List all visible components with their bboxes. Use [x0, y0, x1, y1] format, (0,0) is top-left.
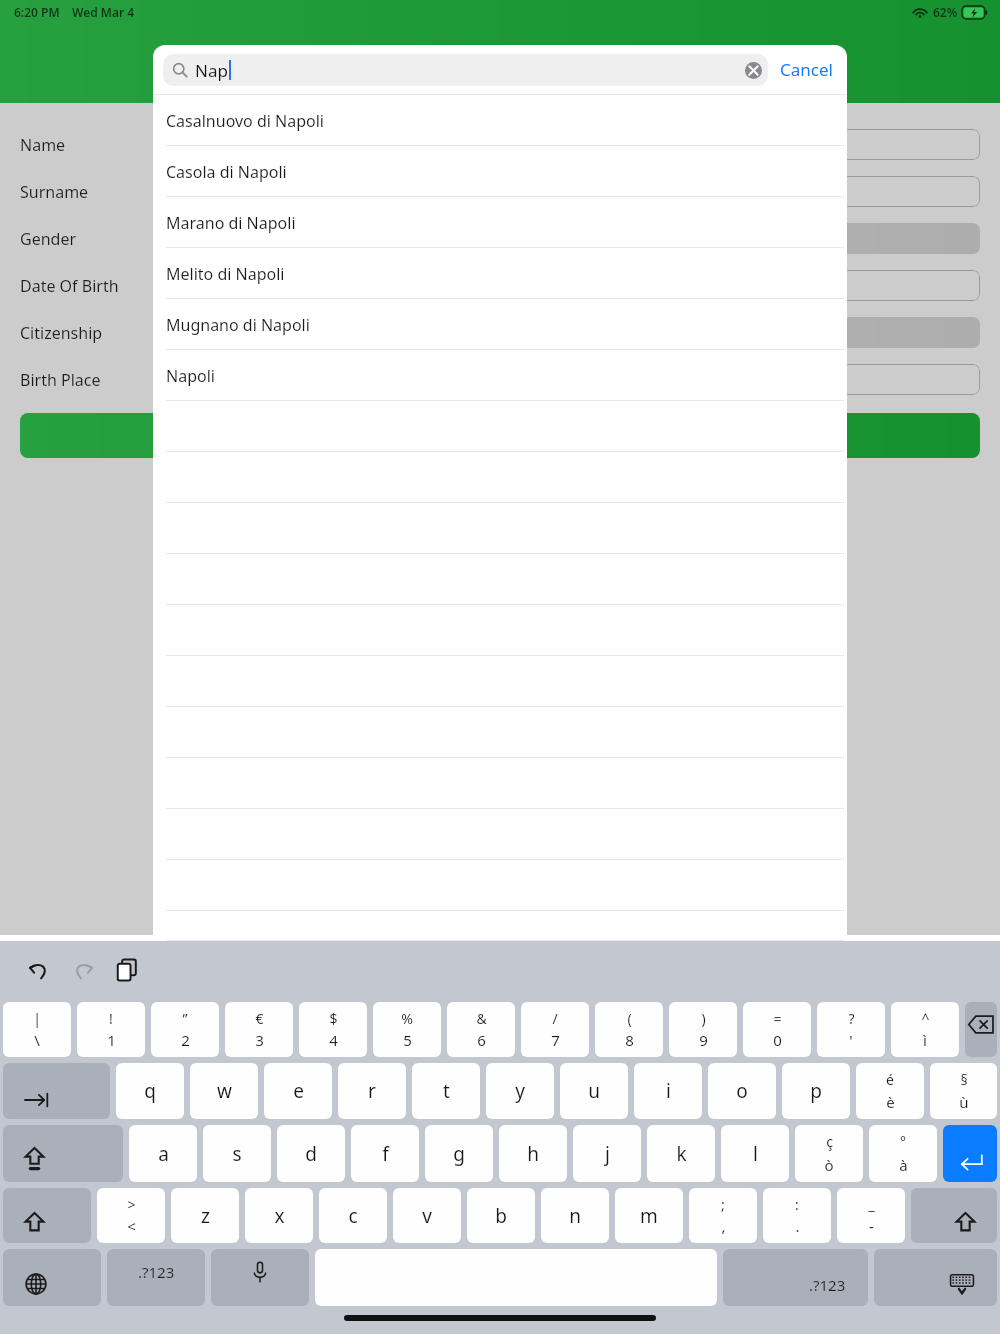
- button[interactable]: [20, 413, 980, 458]
- staticText: j: [605, 1141, 610, 1167]
- button[interactable]: c: [319, 1188, 387, 1243]
- button[interactable]: o: [708, 1063, 776, 1119]
- staticText: 3: [255, 1030, 264, 1050]
- button[interactable]: f: [351, 1125, 419, 1182]
- button[interactable]: ^: [891, 1002, 959, 1057]
- staticText: .: [795, 1216, 800, 1236]
- button[interactable]: (: [595, 1002, 663, 1057]
- button[interactable]: n: [541, 1188, 609, 1243]
- button[interactable]: p: [782, 1063, 850, 1119]
- button[interactable]: Dictation: [211, 1249, 309, 1306]
- button[interactable]: Tab: [3, 1063, 110, 1119]
- button[interactable]: ROSSI: [154, 176, 980, 207]
- staticText: b: [495, 1203, 507, 1229]
- button[interactable]: q: [116, 1063, 184, 1119]
- button[interactable]: Shift: [911, 1188, 997, 1243]
- button[interactable]: §: [930, 1063, 997, 1119]
- staticText: !: [109, 1009, 113, 1028]
- button[interactable]: Hide keyboard: [874, 1249, 997, 1306]
- button[interactable]: Caps lock: [3, 1125, 123, 1182]
- button[interactable]: ?: [817, 1002, 885, 1057]
- button[interactable]: d: [277, 1125, 345, 1182]
- staticText: 8: [625, 1030, 634, 1050]
- button[interactable]: x: [245, 1188, 313, 1243]
- staticText: °: [900, 1132, 906, 1151]
- button[interactable]: g: [425, 1125, 493, 1182]
- button[interactable]: %: [373, 1002, 441, 1057]
- button[interactable]: j: [573, 1125, 641, 1182]
- button[interactable]: e: [264, 1063, 332, 1119]
- button[interactable]: Return: [943, 1125, 997, 1182]
- button[interactable]: !: [77, 1002, 145, 1057]
- button[interactable]: Cancel: [778, 52, 835, 87]
- button[interactable]: Numbers and symbols: [107, 1249, 205, 1306]
- button[interactable]: ;: [689, 1188, 757, 1243]
- button[interactable]: S: [154, 270, 980, 301]
- button[interactable]: Redo: [66, 953, 100, 987]
- button[interactable]: =: [743, 1002, 811, 1057]
- button[interactable]: é: [856, 1063, 924, 1119]
- staticText: e: [293, 1078, 304, 1104]
- button[interactable]: PAOLO: [154, 129, 980, 160]
- button[interactable]: Marano di Napoli: [153, 197, 847, 248]
- staticText: Name: [20, 134, 66, 156]
- button[interactable]: r: [338, 1063, 406, 1119]
- button[interactable]: y: [486, 1063, 554, 1119]
- button[interactable]: w: [190, 1063, 258, 1119]
- staticText: Marano di Napoli: [166, 212, 296, 234]
- button[interactable]: a: [129, 1125, 197, 1182]
- button[interactable]: k: [647, 1125, 715, 1182]
- staticText: m: [640, 1203, 658, 1229]
- staticText: é: [886, 1070, 894, 1089]
- button[interactable]: |: [3, 1002, 71, 1057]
- button[interactable]: Nap: [163, 54, 768, 86]
- button[interactable]: &: [447, 1002, 515, 1057]
- button[interactable]: u: [560, 1063, 628, 1119]
- button[interactable]: >: [97, 1188, 165, 1243]
- staticText: à: [899, 1155, 908, 1175]
- button[interactable]: Backspace: [965, 1002, 997, 1057]
- staticText: Wed Mar 4: [72, 4, 135, 20]
- button[interactable]: t: [412, 1063, 480, 1119]
- button[interactable]: Napoli: [153, 350, 847, 401]
- button[interactable]: ): [669, 1002, 737, 1057]
- button[interactable]: Melito di Napoli: [153, 248, 847, 299]
- button[interactable]: Clear text: [745, 62, 762, 79]
- button[interactable]: h: [499, 1125, 567, 1182]
- button[interactable]: Paste: [110, 953, 144, 987]
- button[interactable]: _: [837, 1188, 905, 1243]
- staticText: 1: [107, 1030, 116, 1050]
- button[interactable]: /: [521, 1002, 589, 1057]
- button[interactable]: €: [225, 1002, 293, 1057]
- button[interactable]: i: [634, 1063, 702, 1119]
- staticText: Napoli: [166, 365, 215, 387]
- staticText: ROSSI: [163, 183, 200, 201]
- button[interactable]: Casalnuovo di Napoli: [153, 95, 847, 146]
- button[interactable]: Undo: [22, 953, 56, 987]
- button[interactable]: $: [299, 1002, 367, 1057]
- button[interactable]: [154, 317, 980, 348]
- button[interactable]: ç: [795, 1125, 863, 1182]
- button[interactable]: v: [393, 1188, 461, 1243]
- button[interactable]: Change keyboard: [3, 1249, 101, 1306]
- staticText: g: [453, 1141, 465, 1167]
- staticText: 5: [403, 1030, 412, 1050]
- button[interactable]: ”: [151, 1002, 219, 1057]
- button[interactable]: m: [615, 1188, 683, 1243]
- button[interactable]: Casola di Napoli: [153, 146, 847, 197]
- staticText: ': [849, 1030, 853, 1050]
- button[interactable]: :: [763, 1188, 831, 1243]
- button[interactable]: Shift: [3, 1188, 91, 1243]
- button[interactable]: Mugnano di Napoli: [153, 299, 847, 350]
- button[interactable]: z: [171, 1188, 239, 1243]
- button[interactable]: °: [869, 1125, 937, 1182]
- button[interactable]: [154, 223, 980, 254]
- staticText: |: [33, 1009, 41, 1028]
- button[interactable]: l: [721, 1125, 789, 1182]
- button[interactable]: Numbers and symbols: [723, 1249, 868, 1306]
- staticText: i: [666, 1078, 671, 1104]
- button[interactable]: b: [467, 1188, 535, 1243]
- button[interactable]: s: [203, 1125, 271, 1182]
- button[interactable]: [154, 364, 980, 395]
